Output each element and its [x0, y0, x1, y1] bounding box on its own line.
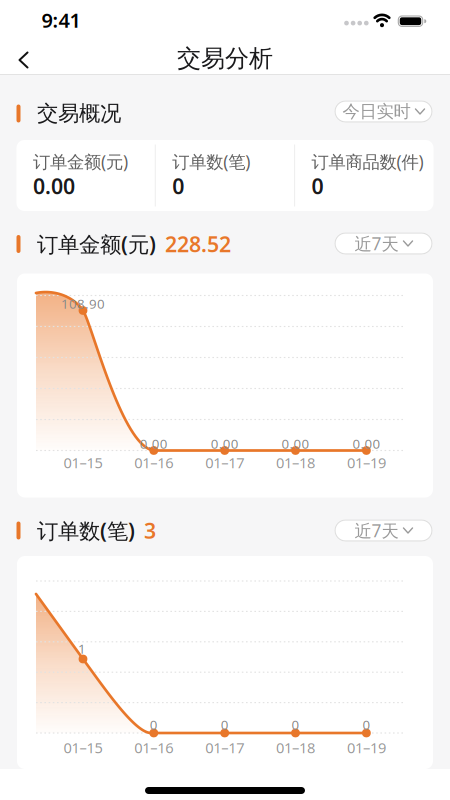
- staticText: 0: [172, 172, 184, 200]
- staticText: 01–17: [205, 738, 244, 757]
- staticText: 01–15: [63, 453, 102, 472]
- staticText: 今日实时: [342, 101, 410, 122]
- staticText: 01–15: [63, 738, 102, 757]
- staticText: 01–17: [205, 453, 244, 472]
- staticText: 0: [150, 716, 158, 733]
- staticText: 订单商品数(件): [312, 150, 424, 173]
- staticText: 交易概况: [37, 100, 121, 127]
- button[interactable]: 今日实时: [334, 100, 432, 122]
- staticText: 01–19: [347, 738, 386, 757]
- staticText: 1: [78, 640, 86, 657]
- staticText: 01–19: [347, 453, 386, 472]
- button[interactable]: 近7天: [334, 232, 432, 254]
- staticText: 9:41: [41, 7, 80, 33]
- staticText: 01–16: [134, 738, 173, 757]
- staticText: 0.00: [281, 435, 309, 452]
- staticText: 0: [362, 716, 370, 733]
- staticText: 0.00: [140, 435, 168, 452]
- staticText: 近7天: [354, 232, 398, 255]
- staticText: 0.00: [352, 435, 380, 452]
- button[interactable]: 近7天: [334, 519, 432, 541]
- staticText: 01–18: [276, 738, 315, 757]
- staticText: 0: [312, 172, 324, 200]
- staticText: 01–18: [276, 453, 315, 472]
- staticText: 0: [221, 716, 229, 733]
- staticText: 0.00: [211, 435, 239, 452]
- staticText: 0.00: [33, 172, 75, 200]
- staticText: 订单数(笔): [37, 516, 135, 545]
- staticText: 近7天: [354, 519, 398, 542]
- staticText: 订单数(笔): [172, 150, 250, 173]
- staticText: 订单金额(元): [37, 230, 156, 258]
- staticText: 228.52: [165, 230, 231, 258]
- staticText: 交易分析: [177, 44, 273, 73]
- staticText: 3: [144, 516, 156, 545]
- staticText: 订单金额(元): [33, 150, 128, 173]
- button[interactable]: Back: [12, 47, 35, 72]
- staticText: 01–16: [134, 453, 173, 472]
- staticText: 108.90: [61, 295, 105, 312]
- staticText: 0: [291, 716, 299, 733]
